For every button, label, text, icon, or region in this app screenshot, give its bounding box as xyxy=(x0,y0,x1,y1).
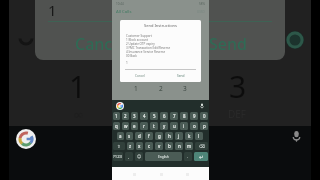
button[interactable]: l xyxy=(195,132,203,140)
button[interactable]: Emoji xyxy=(135,152,143,161)
button[interactable]: b xyxy=(165,142,173,150)
button[interactable]: u xyxy=(170,122,178,130)
staticText: 1 xyxy=(115,113,118,119)
staticText: b xyxy=(168,143,171,149)
button[interactable]: Shift xyxy=(113,142,125,150)
button[interactable]: Home xyxy=(156,169,166,179)
staticText: 58% xyxy=(199,2,205,6)
button[interactable]: Send xyxy=(160,72,201,80)
staticText: 8 xyxy=(183,113,186,119)
button[interactable]: f xyxy=(145,132,153,140)
button[interactable]: 8 xyxy=(180,112,188,120)
staticText: j xyxy=(178,133,180,139)
staticText: 3 xyxy=(183,84,187,93)
button[interactable]: 1 xyxy=(134,84,138,93)
button[interactable]: Symbols xyxy=(113,152,123,161)
staticText: ⌫ xyxy=(199,144,205,149)
button[interactable]: k xyxy=(185,132,193,140)
staticText: , xyxy=(128,154,130,160)
staticText: Send Instructions xyxy=(120,23,201,28)
button[interactable]: English xyxy=(145,152,182,161)
staticText: 5 xyxy=(153,113,156,119)
button[interactable]: Cancel xyxy=(120,72,160,80)
button[interactable]: n xyxy=(175,142,183,150)
staticText: d xyxy=(138,133,141,139)
button[interactable]: 7 xyxy=(170,112,178,120)
staticText: . xyxy=(187,154,189,160)
button[interactable]: t xyxy=(150,122,158,130)
staticText: 2 xyxy=(124,113,127,119)
button[interactable]: w xyxy=(122,122,129,130)
staticText: Cancel xyxy=(75,33,126,55)
button[interactable]: z xyxy=(127,142,134,150)
staticText: ↵ xyxy=(199,154,204,160)
staticText: 3 xyxy=(133,113,136,119)
button[interactable]: m xyxy=(185,142,193,150)
button[interactable]: Recents xyxy=(182,169,192,179)
button[interactable]: 2 xyxy=(122,112,129,120)
button[interactable]: j xyxy=(175,132,183,140)
button[interactable]: 2 xyxy=(158,84,163,94)
staticText: 9 xyxy=(193,113,196,119)
button[interactable]: 9 xyxy=(190,112,198,120)
staticText: s xyxy=(128,133,131,139)
staticText: x xyxy=(138,143,141,149)
staticText: 3 xyxy=(229,66,247,107)
button[interactable]: a xyxy=(117,132,124,140)
button[interactable]: 4 xyxy=(140,112,148,120)
button[interactable]: r xyxy=(140,122,148,130)
staticText: z xyxy=(129,143,132,149)
staticText: f xyxy=(148,133,150,139)
button[interactable]: i xyxy=(180,122,188,130)
staticText: ☺ xyxy=(137,154,142,159)
button[interactable]: o xyxy=(190,122,198,130)
button[interactable]: 5 xyxy=(150,112,158,120)
staticText: 1 xyxy=(48,0,57,20)
button[interactable]: q xyxy=(113,122,120,130)
staticText: r xyxy=(143,123,145,129)
staticText: 1 xyxy=(134,84,138,93)
button[interactable]: Period xyxy=(184,152,192,161)
button[interactable]: Back xyxy=(129,169,139,179)
staticText: 10:44 xyxy=(116,2,124,6)
button[interactable]: d xyxy=(135,132,143,140)
button[interactable]: Voice input xyxy=(199,103,205,109)
staticText: Send xyxy=(177,74,185,78)
staticText: e xyxy=(133,123,136,129)
staticText: g xyxy=(158,133,161,139)
staticText: v xyxy=(158,143,161,149)
button[interactable]: p xyxy=(200,122,208,130)
button[interactable]: v xyxy=(155,142,163,150)
staticText: c xyxy=(148,143,151,149)
button[interactable]: Comma xyxy=(125,152,133,161)
staticText: t xyxy=(153,123,155,129)
staticText: a xyxy=(119,133,122,139)
staticText: 6 xyxy=(163,113,166,119)
button[interactable]: 3 xyxy=(131,112,138,120)
button[interactable]: 0 xyxy=(200,112,208,120)
staticText: English xyxy=(158,155,169,159)
staticText: 7 xyxy=(173,113,176,119)
staticText: 0 xyxy=(203,113,206,119)
button[interactable]: x xyxy=(136,142,143,150)
button[interactable]: g xyxy=(155,132,163,140)
button[interactable]: e xyxy=(131,122,138,130)
button[interactable]: h xyxy=(165,132,173,140)
staticText: Cancel xyxy=(135,74,145,78)
button[interactable]: s xyxy=(126,132,133,140)
button[interactable]: 1 xyxy=(113,112,120,120)
button[interactable]: c xyxy=(145,142,153,150)
staticText: ?123 xyxy=(113,154,123,160)
button[interactable]: 6 xyxy=(160,112,168,120)
button[interactable]: 3 xyxy=(183,84,187,94)
button[interactable]: y xyxy=(160,122,168,130)
button[interactable]: Backspace xyxy=(195,142,208,150)
staticText: 1 xyxy=(126,61,128,65)
staticText: l xyxy=(198,133,200,139)
button[interactable]: Enter xyxy=(194,152,208,161)
button[interactable]: Google xyxy=(116,102,124,110)
